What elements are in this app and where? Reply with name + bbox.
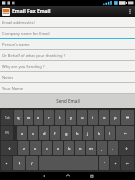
button[interactable]: q xyxy=(14,110,23,125)
staticText: c xyxy=(46,146,48,151)
staticText: s xyxy=(32,131,34,136)
button[interactable]: l xyxy=(105,126,115,140)
button[interactable]: Notes xyxy=(0,72,135,83)
staticText: o xyxy=(103,115,106,120)
staticText: ' xyxy=(104,161,105,166)
button[interactable]: t xyxy=(55,110,65,125)
staticText: Why are you Sending ? xyxy=(2,64,45,69)
button[interactable]: Company name for Email xyxy=(0,28,135,39)
button[interactable]: h xyxy=(72,126,82,140)
button[interactable]: Shift xyxy=(119,141,134,155)
button[interactable]: Recents xyxy=(85,172,99,180)
button[interactable]: FN xyxy=(1,126,13,140)
staticText: . xyxy=(112,146,114,151)
staticText: q xyxy=(17,115,20,120)
staticText: v xyxy=(57,146,60,151)
staticText: Your Name xyxy=(2,86,23,91)
staticText: p xyxy=(114,115,117,120)
button[interactable]: b xyxy=(64,141,74,155)
staticText: k xyxy=(98,131,101,136)
button[interactable]: Voice input xyxy=(13,156,25,170)
button[interactable]: w xyxy=(24,110,33,125)
button[interactable]: App icon xyxy=(2,8,10,16)
staticText: j xyxy=(87,131,89,136)
staticText: y xyxy=(70,115,73,120)
button[interactable]: Hide keyboard xyxy=(121,156,134,170)
staticText: n xyxy=(79,146,82,151)
staticText: Notes xyxy=(2,75,14,80)
button[interactable]: a xyxy=(17,126,27,140)
button[interactable]: z xyxy=(18,141,29,155)
staticText: Or Behalf of what your thanking ? xyxy=(2,53,66,58)
staticText: Person's name xyxy=(2,42,30,47)
button[interactable]: ' xyxy=(99,156,109,170)
button[interactable]: Person's name xyxy=(0,39,135,50)
button[interactable]: Settings xyxy=(110,156,120,170)
staticText: Company name for Email xyxy=(2,31,50,36)
button[interactable]: p xyxy=(110,110,120,125)
button[interactable]: . xyxy=(108,141,118,155)
button[interactable]: y xyxy=(66,110,76,125)
staticText: z xyxy=(23,146,25,151)
button[interactable]: Enter xyxy=(116,126,134,140)
staticText: f xyxy=(54,131,56,136)
button[interactable]: , xyxy=(97,141,107,155)
button[interactable]: i xyxy=(88,110,98,125)
button[interactable]: Your Name xyxy=(0,83,135,94)
button[interactable]: Symbols xyxy=(1,156,12,170)
staticText: l xyxy=(109,131,111,136)
button[interactable]: r xyxy=(44,110,54,125)
button[interactable]: Shift xyxy=(1,141,17,155)
staticText: h xyxy=(76,131,79,136)
button[interactable]: x xyxy=(30,141,41,155)
staticText: x xyxy=(34,146,37,151)
button[interactable]: Home xyxy=(61,172,75,180)
staticText: Send Email xyxy=(56,98,80,104)
button[interactable]: d xyxy=(39,126,49,140)
button[interactable]: n xyxy=(75,141,85,155)
button[interactable]: k xyxy=(94,126,104,140)
staticText: g xyxy=(65,131,68,136)
button[interactable]: / xyxy=(26,156,38,170)
staticText: i xyxy=(92,115,94,120)
staticText: d xyxy=(43,131,46,136)
button[interactable]: Tab xyxy=(1,110,13,125)
staticText: b xyxy=(68,146,71,151)
button[interactable]: More options xyxy=(126,6,134,17)
button[interactable]: u xyxy=(77,110,87,125)
staticText: m xyxy=(89,146,93,151)
button[interactable]: c xyxy=(42,141,52,155)
button[interactable]: m xyxy=(86,141,96,155)
button[interactable]: v xyxy=(53,141,63,155)
button[interactable]: Or Behalf of what your thanking ? xyxy=(0,50,135,61)
button[interactable]: s xyxy=(28,126,38,140)
staticText: Tab xyxy=(5,116,10,120)
staticText: Email Fax Email xyxy=(12,8,126,15)
button[interactable]: Back xyxy=(37,172,51,180)
button[interactable]: j xyxy=(83,126,93,140)
staticText: t xyxy=(59,115,61,120)
button[interactable]: o xyxy=(99,110,109,125)
staticText: a xyxy=(21,131,24,136)
staticText: w xyxy=(27,115,31,120)
staticText: e xyxy=(37,115,40,120)
button[interactable]: g xyxy=(61,126,71,140)
staticText: FN xyxy=(5,131,9,135)
staticText: , xyxy=(101,146,103,151)
button[interactable]: Backspace xyxy=(121,110,134,125)
staticText: u xyxy=(81,115,84,120)
staticText: Email address(es) xyxy=(2,20,35,25)
button[interactable]: e xyxy=(34,110,43,125)
button[interactable]: Send Email xyxy=(0,94,135,108)
button[interactable]: Why are you Sending ? xyxy=(0,61,135,72)
button[interactable]: f xyxy=(50,126,60,140)
staticText: r xyxy=(48,115,50,120)
button[interactable]: Email address(es) xyxy=(0,17,135,28)
staticText: / xyxy=(31,161,33,166)
